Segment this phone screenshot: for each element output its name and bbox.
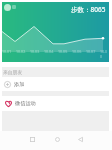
button[interactable]: 微信运动 bbox=[2, 96, 109, 111]
staticText: 步数：8065 bbox=[71, 5, 106, 14]
button[interactable]: Home bbox=[51, 133, 63, 145]
button[interactable]: Back bbox=[74, 133, 86, 145]
staticText: 10.03 bbox=[30, 49, 40, 54]
button[interactable]: Recents bbox=[26, 133, 38, 145]
staticText: 10.08 bbox=[100, 49, 109, 59]
staticText: 来自朋友 bbox=[3, 69, 23, 75]
button[interactable]: 添加 bbox=[2, 77, 109, 91]
staticText: 添加 bbox=[14, 81, 25, 88]
staticText: 10.04 bbox=[44, 49, 54, 54]
staticText: 10.05 bbox=[58, 49, 68, 54]
staticText: 10.06 bbox=[72, 49, 82, 54]
staticText: 10.01 bbox=[2, 49, 12, 54]
staticText: 微信运动 bbox=[15, 100, 36, 107]
staticText: 10.02 bbox=[16, 49, 26, 54]
staticText: 10.07 bbox=[86, 49, 96, 54]
button[interactable]: Profile bbox=[4, 4, 11, 11]
